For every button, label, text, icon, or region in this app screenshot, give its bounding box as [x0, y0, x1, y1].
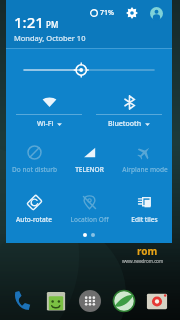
button[interactable]: Auto-rotate [6, 192, 62, 232]
staticText: PM [46, 19, 59, 30]
staticText: 71% [100, 8, 114, 18]
staticText: o [157, 229, 164, 244]
button[interactable]: Brightness [6, 49, 172, 91]
button[interactable]: Settings [124, 5, 140, 21]
staticText: TELENOR [75, 165, 104, 174]
button[interactable]: Phone [8, 286, 38, 316]
button[interactable]: Apps [75, 286, 105, 316]
staticText: Monday, October 10 [14, 33, 86, 43]
button[interactable]: Airplane mode [117, 142, 172, 182]
button[interactable]: User [148, 5, 164, 21]
staticText: www.needrom.com [122, 258, 164, 264]
staticText: Location Off [70, 215, 109, 224]
button[interactable]: Edit tiles [117, 192, 172, 232]
button[interactable]: Browser [109, 286, 139, 316]
staticText: Edit tiles [131, 215, 158, 224]
button[interactable]: Bluetooth [96, 91, 162, 136]
staticText: Auto-rotate [16, 215, 52, 224]
staticText: 1:21 [14, 12, 44, 32]
staticText: Do not disturb [12, 165, 57, 174]
staticText: rom [137, 244, 158, 258]
staticText: Wi-Fi [37, 119, 54, 129]
staticText: Airplane mode [122, 165, 168, 174]
staticText: Bluetooth [108, 119, 142, 129]
button[interactable]: Do not disturb [6, 142, 62, 182]
button[interactable]: Messaging [41, 286, 71, 316]
button[interactable]: TELENOR [62, 142, 117, 182]
button[interactable]: Battery 71 percent [88, 6, 116, 20]
button[interactable]: Camera [142, 286, 172, 316]
staticText: need [129, 229, 157, 244]
button[interactable]: Wi-Fi [16, 91, 82, 136]
button[interactable]: Location Off [62, 192, 117, 232]
